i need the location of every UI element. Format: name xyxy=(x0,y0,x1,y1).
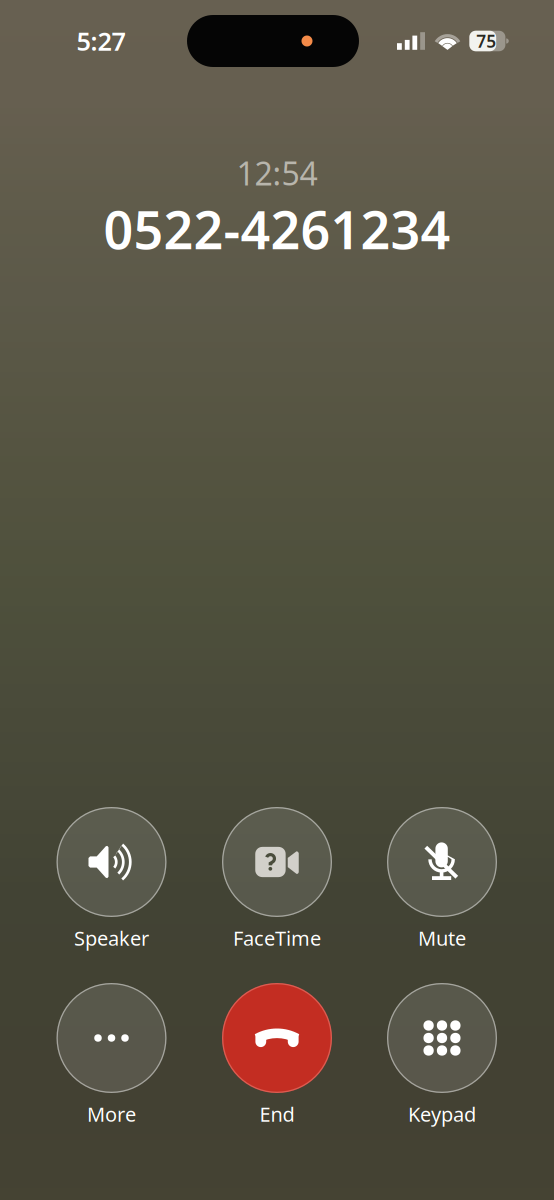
button[interactable]: More xyxy=(41,983,181,1133)
staticText: 12:54 xyxy=(236,152,317,194)
staticText: FaceTime xyxy=(233,925,321,951)
staticText: End xyxy=(259,1101,294,1127)
button[interactable]: Speaker xyxy=(41,807,181,957)
button[interactable]: Mute xyxy=(372,807,512,957)
staticText: Speaker xyxy=(74,925,149,951)
staticText: 0522-4261234 xyxy=(103,194,450,264)
staticText: Keypad xyxy=(408,1101,476,1127)
staticText: 5:27 xyxy=(76,24,125,58)
staticText: More xyxy=(87,1101,136,1127)
button[interactable]: FaceTime xyxy=(207,807,347,957)
staticText: Mute xyxy=(418,925,466,951)
button[interactable]: End xyxy=(207,983,347,1133)
button[interactable]: Keypad xyxy=(372,983,512,1133)
staticText: 75 xyxy=(476,29,496,52)
